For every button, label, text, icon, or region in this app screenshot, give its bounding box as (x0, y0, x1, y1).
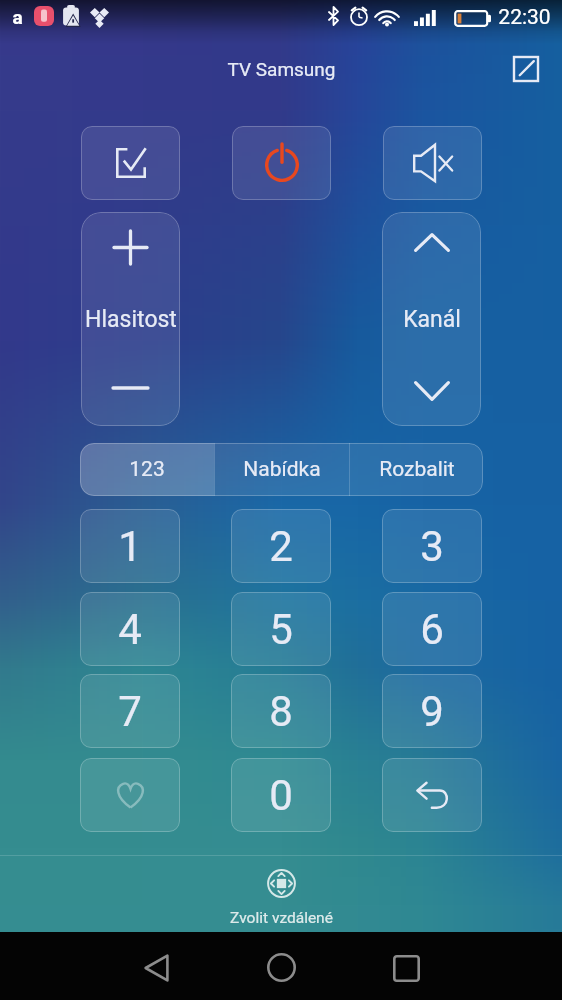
staticText: 0 (269, 771, 293, 820)
staticText: Kanál (403, 306, 461, 333)
staticText: 123 (129, 457, 165, 482)
button[interactable]: 5 (231, 592, 331, 666)
button[interactable]: 3 (382, 509, 482, 583)
button[interactable]: Nabídka (215, 443, 349, 496)
button[interactable]: Kanál (382, 212, 481, 426)
button[interactable]: 2 (231, 509, 331, 583)
staticText: 5 (269, 605, 293, 654)
button[interactable] (382, 758, 482, 832)
staticText: TV Samsung (227, 58, 336, 80)
staticText: Hlasitost (85, 306, 177, 333)
staticText: 7 (118, 687, 142, 736)
staticText: 8 (269, 687, 293, 736)
button[interactable]: Back (123, 935, 189, 1000)
button[interactable]: 4 (80, 592, 180, 666)
button[interactable]: 7 (80, 674, 180, 748)
button[interactable]: 9 (382, 674, 482, 748)
staticText: Zvolit vzdálené (230, 909, 333, 927)
button[interactable] (383, 126, 482, 200)
staticText: Nabídka (243, 457, 321, 482)
staticText: 6 (420, 605, 444, 654)
button[interactable]: Zvolit vzdálené (0, 869, 562, 927)
button[interactable]: Recents (373, 935, 439, 1000)
staticText: 22:30 (498, 5, 551, 30)
button[interactable] (81, 126, 180, 200)
button[interactable]: 0 (231, 758, 331, 832)
button[interactable]: 8 (231, 674, 331, 748)
button[interactable]: 1 (80, 509, 180, 583)
button[interactable]: Rozbalit (350, 443, 483, 496)
staticText: a (12, 6, 23, 28)
button[interactable] (232, 126, 331, 200)
staticText: 9 (420, 687, 444, 736)
button[interactable]: Edit (502, 45, 550, 93)
staticText: 2 (269, 522, 293, 571)
staticText: 4 (118, 605, 142, 654)
button[interactable]: 123 (80, 443, 214, 496)
button[interactable] (80, 758, 180, 832)
button[interactable]: Hlasitost (81, 212, 180, 426)
staticText: 1 (118, 522, 142, 571)
staticText: Rozbalit (379, 457, 455, 482)
button[interactable]: 6 (382, 592, 482, 666)
staticText: 3 (420, 522, 444, 571)
button[interactable]: Home (248, 934, 314, 1000)
